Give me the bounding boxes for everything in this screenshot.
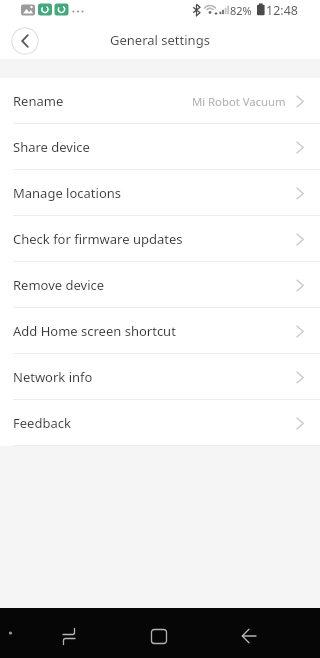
button[interactable]: Feedback (0, 400, 320, 446)
staticText: Share device (13, 138, 90, 156)
button[interactable] (139, 616, 179, 656)
staticText: Rename (13, 92, 64, 110)
button[interactable]: Add Home screen shortcut (0, 308, 320, 354)
staticText: Feedback (13, 414, 71, 432)
staticText: 82% (230, 3, 252, 18)
button[interactable]: Rename (0, 78, 320, 124)
staticText: General settings (110, 31, 210, 49)
staticText: Add Home screen shortcut (13, 322, 176, 340)
staticText: Check for firmware updates (13, 230, 183, 248)
button[interactable] (229, 616, 269, 656)
staticText: Manage locations (13, 184, 122, 202)
button[interactable]: Check for firmware updates (0, 216, 320, 262)
staticText: Network info (13, 368, 93, 386)
button[interactable]: Share device (0, 124, 320, 170)
button[interactable] (11, 27, 39, 55)
staticText: Mi Robot Vacuum (192, 94, 286, 109)
button[interactable] (49, 616, 89, 656)
staticText: 12:48 (266, 2, 298, 19)
staticText: Remove device (13, 276, 105, 294)
button[interactable]: Manage locations (0, 170, 320, 216)
button[interactable]: Remove device (0, 262, 320, 308)
button[interactable]: Network info (0, 354, 320, 400)
